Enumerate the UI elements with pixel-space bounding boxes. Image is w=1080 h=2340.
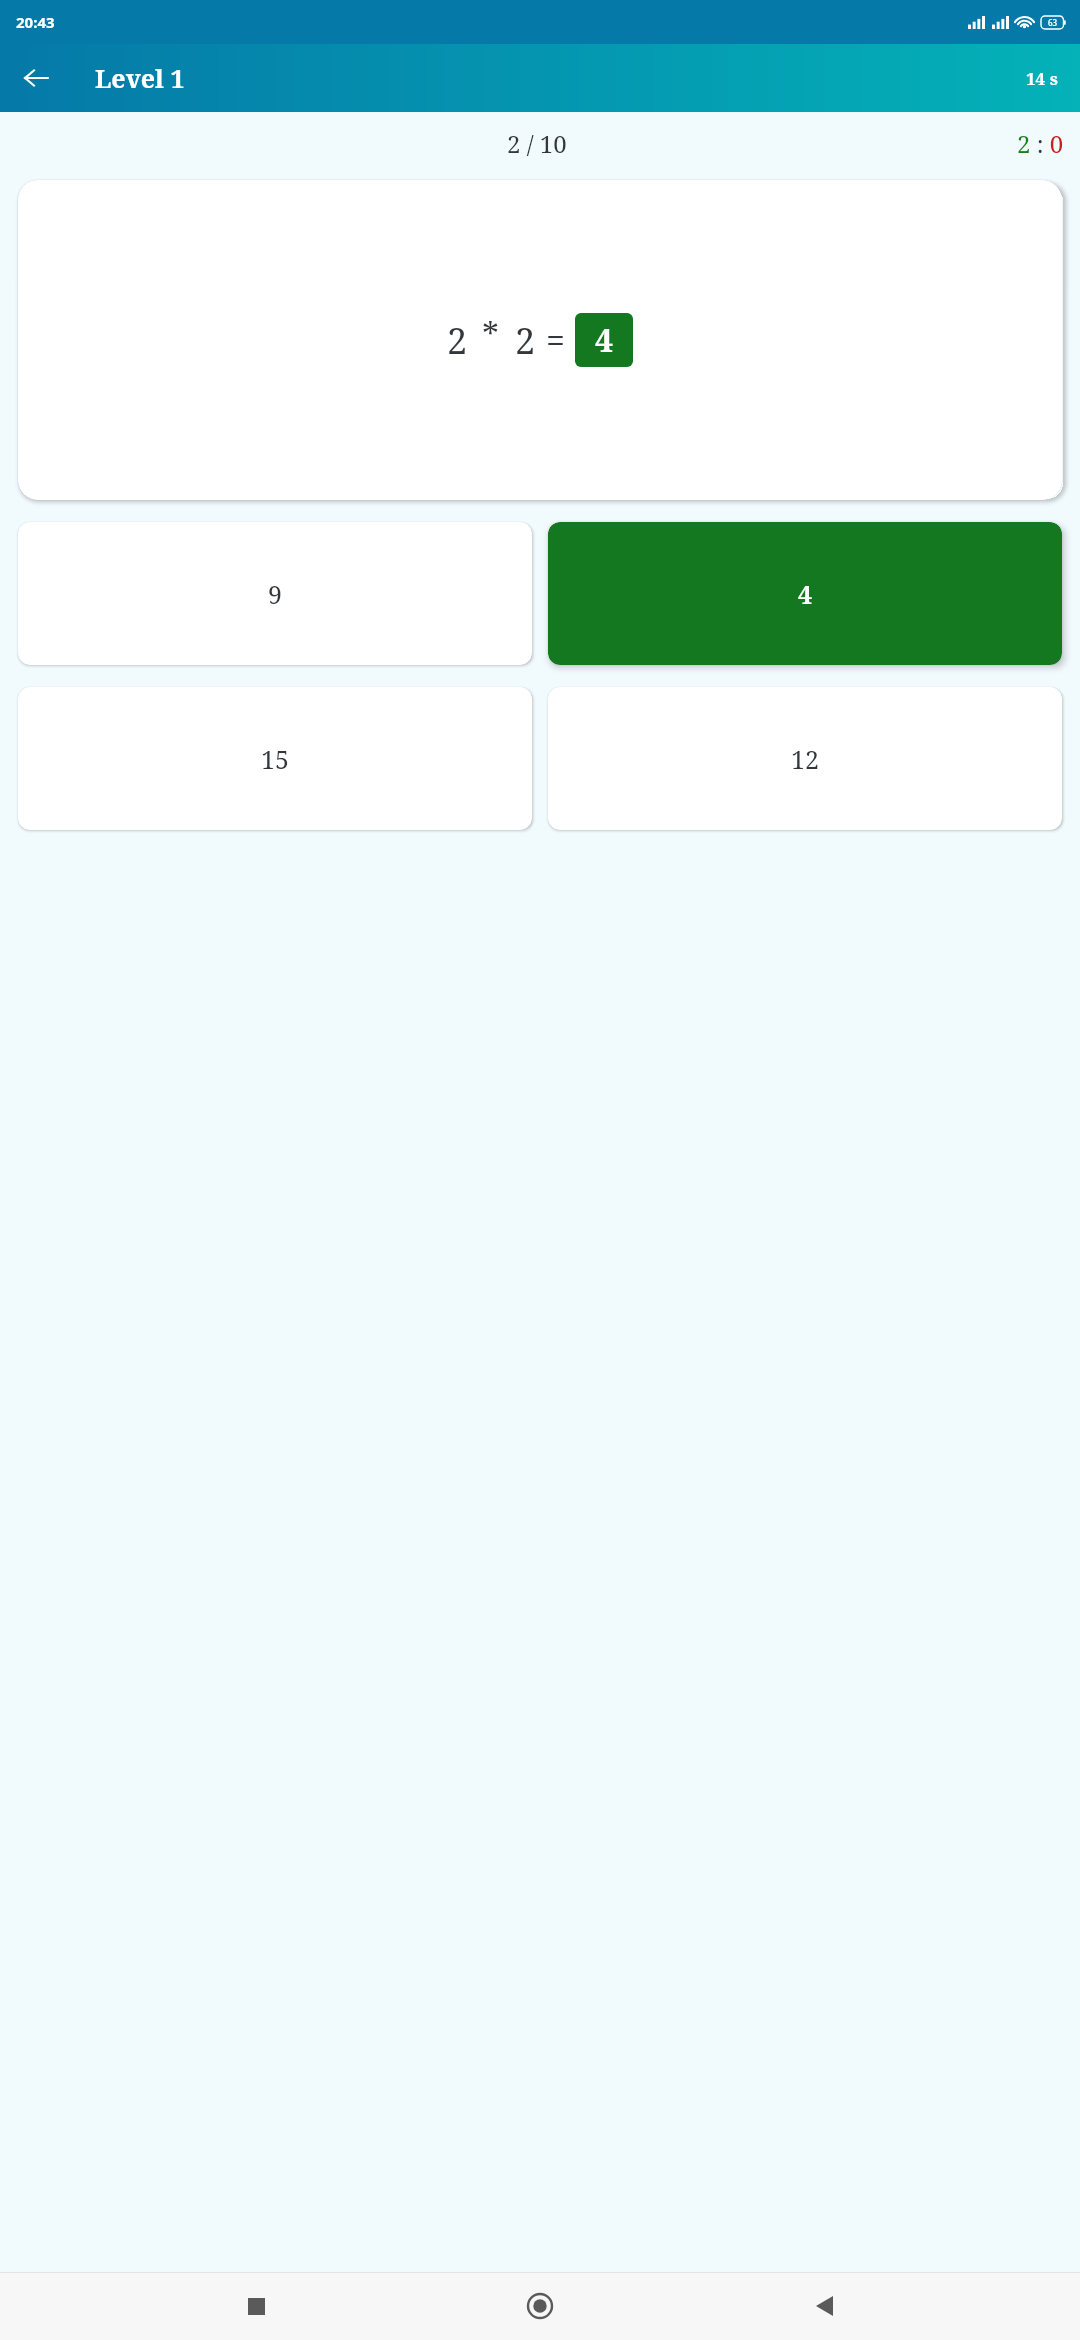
button[interactable]: Back (796, 2278, 852, 2334)
button[interactable]: 15 (18, 687, 532, 830)
staticText: 9 (268, 577, 282, 611)
staticText: 15 (261, 742, 289, 776)
staticText: 2 / 10 (507, 127, 567, 160)
staticText: 63 (1048, 17, 1058, 28)
button[interactable]: Back (12, 54, 60, 102)
staticText: * (482, 311, 499, 357)
staticText: 4 (798, 577, 813, 611)
staticText: 2 (515, 316, 536, 365)
button[interactable]: 4 (548, 522, 1062, 665)
button[interactable]: Home (512, 2278, 568, 2334)
button[interactable]: Recent apps (228, 2278, 284, 2334)
staticText: = (546, 317, 566, 363)
staticText: 14 s (1026, 67, 1058, 90)
staticText: Level 1 (95, 61, 185, 95)
staticText: 20:43 (16, 12, 55, 32)
staticText: 12 (791, 742, 819, 776)
button[interactable]: 12 (548, 687, 1062, 830)
button[interactable]: 9 (18, 522, 532, 665)
staticText: 4 (595, 318, 614, 362)
staticText: 2 (447, 316, 468, 365)
staticText: 2 : 0 (1017, 127, 1064, 160)
